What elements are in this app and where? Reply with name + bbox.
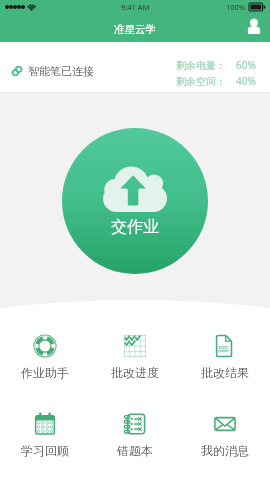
staticText: 40% bbox=[236, 74, 256, 88]
staticText: 剩余空间： bbox=[176, 75, 226, 88]
staticText: 100% bbox=[226, 2, 246, 12]
button[interactable]: 批改结果 bbox=[180, 330, 270, 384]
staticText: 批改进度 bbox=[111, 365, 159, 380]
staticText: 错题本 bbox=[117, 443, 153, 458]
staticText: 准星云学 bbox=[114, 23, 156, 36]
staticText: 作业助手 bbox=[21, 365, 69, 380]
button[interactable]: 批改进度 bbox=[90, 330, 180, 384]
staticText: 我的消息 bbox=[201, 443, 249, 458]
staticText: 批改结果 bbox=[201, 365, 249, 380]
staticText: 学习回顾 bbox=[21, 443, 69, 458]
staticText: 60% bbox=[236, 58, 256, 72]
staticText: 9:41 AM bbox=[121, 2, 150, 12]
button[interactable]: 作业助手 bbox=[0, 330, 90, 384]
button[interactable]: 交作业 bbox=[62, 128, 208, 274]
staticText: 交作业 bbox=[111, 217, 159, 237]
button[interactable]: Profile bbox=[243, 15, 265, 37]
staticText: 智能笔已连接 bbox=[28, 64, 94, 78]
button[interactable]: 错题本 bbox=[90, 408, 180, 462]
button[interactable]: 学习回顾 bbox=[0, 408, 90, 462]
staticText: 剩余电量： bbox=[176, 59, 226, 72]
button[interactable]: 我的消息 bbox=[180, 408, 270, 462]
